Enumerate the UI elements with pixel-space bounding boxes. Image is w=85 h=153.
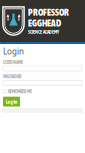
staticText: REMEMBER ME [8,89,32,94]
button[interactable]: Login [3,97,20,107]
staticText: Login [3,46,24,57]
staticText: PASSWORD [3,74,22,79]
staticText: USER NAME [3,60,23,65]
staticText: SCIENCE ACADEMY [28,29,59,35]
staticText: PROFESSOR [28,7,69,18]
staticText: Login [5,98,17,105]
staticText: EGGHEAD [28,18,61,28]
